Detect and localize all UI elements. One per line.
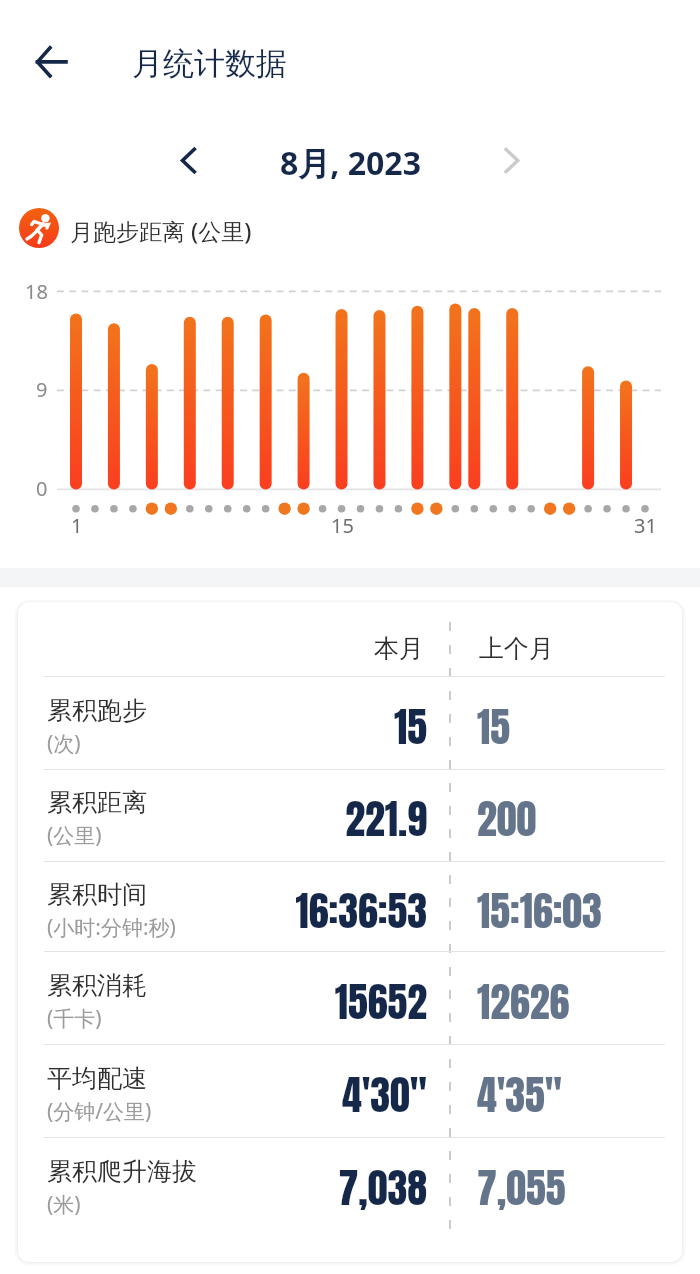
staticText: 7,038 <box>18 1158 427 1218</box>
staticText: (千卡) <box>47 1004 102 1033</box>
staticText: 12626 <box>477 972 570 1032</box>
staticText: 累积消耗 <box>47 970 147 1001</box>
staticText: (小时:分钟:秒) <box>47 913 176 942</box>
staticText: 上个月 <box>479 633 554 664</box>
staticText: 月统计数据 <box>132 44 287 83</box>
other: Running <box>19 208 59 248</box>
staticText: 7,055 <box>477 1158 566 1218</box>
staticText: 31 <box>634 512 657 539</box>
button[interactable]: 平均配速 <box>18 1044 682 1137</box>
staticText: 15 <box>477 697 510 757</box>
staticText: 0 <box>36 475 48 501</box>
staticText: 18 <box>25 278 48 304</box>
staticText: 15 <box>18 697 427 757</box>
staticText: 8月, 2023 <box>280 141 421 185</box>
staticText: (分钟/公里) <box>47 1097 152 1126</box>
button[interactable]: 累积爬升海拔 <box>18 1137 682 1230</box>
staticText: 4'35" <box>477 1065 562 1125</box>
staticText: 平均配速 <box>47 1063 147 1094</box>
staticText: 本月 <box>374 633 424 664</box>
staticText: 15:16:03 <box>477 881 602 941</box>
staticText: 1 <box>71 512 83 539</box>
staticText: 15 <box>331 512 354 539</box>
button[interactable]: Back <box>18 38 66 86</box>
staticText: 月跑步距离 (公里) <box>70 215 252 246</box>
staticText: 16:36:53 <box>18 881 427 941</box>
staticText: 9 <box>36 376 48 402</box>
button[interactable]: 累积距离 <box>18 769 682 860</box>
staticText: 200 <box>477 789 537 849</box>
staticText: (次) <box>47 729 81 758</box>
button[interactable]: 累积时间 <box>18 861 682 952</box>
staticText: 221.9 <box>18 789 427 849</box>
button[interactable]: 累积消耗 <box>18 951 682 1044</box>
staticText: (米) <box>47 1190 81 1219</box>
button[interactable]: Next month <box>489 137 536 184</box>
staticText: 4'30" <box>18 1065 427 1125</box>
button[interactable]: Previous month <box>165 137 212 184</box>
staticText: 15652 <box>18 972 427 1032</box>
staticText: 累积跑步 <box>47 695 147 726</box>
staticText: 累积时间 <box>47 879 147 910</box>
button[interactable]: 累积跑步 <box>18 676 682 769</box>
staticText: (公里) <box>47 821 102 850</box>
staticText: 累积距离 <box>47 787 147 818</box>
staticText: 累积爬升海拔 <box>47 1156 197 1187</box>
